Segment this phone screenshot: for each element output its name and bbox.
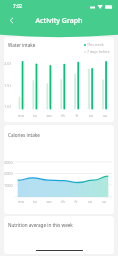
staticText: sa [87,113,95,118]
staticText: fr [72,199,80,204]
staticText: su [101,113,109,118]
staticText: mo [17,199,25,204]
staticText: Calories intake [8,132,40,138]
staticText: fr [73,113,81,118]
staticText: we [45,113,53,118]
staticText: th [59,199,67,204]
staticText: 2000 [4,171,13,176]
staticText: 7:02 [13,3,23,9]
staticText: tu [31,113,39,118]
button[interactable]: Back [3,12,19,28]
staticText: sa [86,199,94,204]
staticText: tu [31,199,39,204]
staticText: 7 days before [87,49,110,54]
staticText: mo [17,113,25,118]
staticText: Nutrition average in this week [8,222,73,228]
staticText: we [45,199,53,204]
staticText: Water intake [8,42,36,48]
staticText: 1000 [4,183,13,188]
staticText: 1.0 l [4,104,12,109]
staticText: This week [87,42,104,47]
staticText: th [59,113,67,118]
staticText: su [100,199,108,204]
staticText: Activity Graph [0,16,118,26]
staticText: 3000 [4,160,13,165]
staticText: 1.5 l [4,83,12,88]
staticText: 2.0 l [4,61,12,66]
